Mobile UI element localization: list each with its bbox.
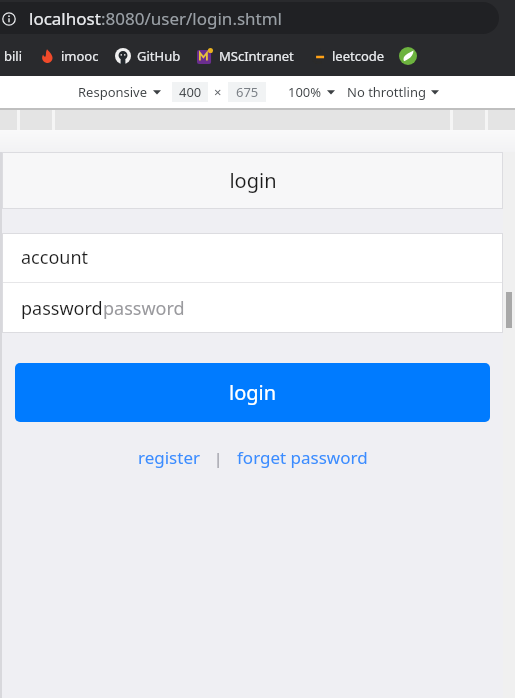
- other: Site information: [0, 10, 18, 28]
- staticText: Responsive: [78, 83, 148, 101]
- staticText: localhost: [29, 7, 101, 30]
- staticText: 100%: [288, 83, 322, 101]
- staticText: password: [21, 296, 103, 321]
- button[interactable]: bili: [2, 47, 25, 65]
- staticText: ×: [214, 83, 222, 101]
- staticText: MScIntranet: [219, 47, 294, 65]
- staticText: bili: [4, 47, 23, 65]
- button[interactable]: Responsive: [78, 83, 161, 101]
- staticText: login: [229, 167, 277, 194]
- button[interactable]: password: [2, 283, 503, 333]
- button[interactable]: No throttling: [347, 83, 439, 101]
- button[interactable]: Spring: [399, 47, 417, 65]
- staticText: account: [21, 245, 89, 270]
- staticText: register: [138, 446, 200, 469]
- staticText: |: [214, 448, 223, 468]
- staticText: No throttling: [347, 83, 426, 101]
- staticText: 675: [236, 83, 259, 101]
- button[interactable]: GitHub: [113, 47, 183, 65]
- button[interactable]: imooc: [37, 47, 101, 65]
- staticText: :8080/user/login.shtml: [101, 7, 282, 30]
- button[interactable]: register: [134, 446, 204, 469]
- button[interactable]: leetcode: [308, 47, 387, 65]
- button[interactable]: 675: [228, 82, 266, 102]
- button[interactable]: Site information: [0, 2, 499, 34]
- button[interactable]: account: [2, 233, 503, 282]
- staticText: GitHub: [137, 47, 181, 65]
- staticText: forget password: [237, 446, 368, 469]
- button[interactable]: 100%: [288, 83, 335, 101]
- staticText: imooc: [61, 47, 99, 65]
- staticText: 400: [179, 83, 202, 101]
- staticText: password: [103, 296, 185, 321]
- button[interactable]: 400: [172, 82, 208, 102]
- staticText: login: [229, 379, 277, 406]
- staticText: leetcode: [332, 47, 385, 65]
- button[interactable]: login: [15, 363, 490, 422]
- button[interactable]: forget password: [233, 446, 372, 469]
- button[interactable]: MScIntranet: [195, 47, 296, 65]
